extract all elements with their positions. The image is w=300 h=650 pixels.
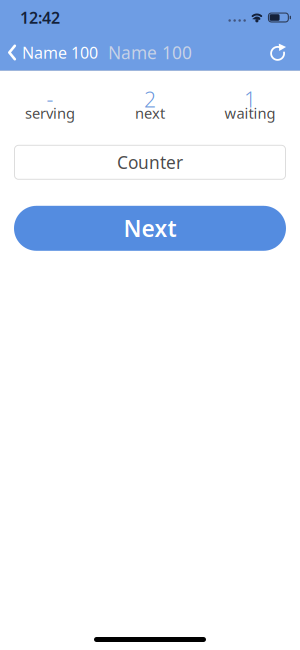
staticText: serving	[25, 103, 75, 123]
staticText: Counter	[117, 151, 183, 174]
staticText: Next	[123, 213, 176, 243]
staticText: waiting	[224, 103, 275, 123]
staticText: Name 100	[22, 42, 98, 63]
staticText: -	[46, 85, 53, 113]
staticText: 12:42	[20, 7, 60, 28]
button[interactable]: Refresh	[270, 44, 300, 61]
staticText: 1	[244, 85, 256, 113]
staticText: next	[135, 103, 165, 123]
button[interactable]: Name 100	[0, 42, 98, 63]
staticText: Name 100	[108, 41, 192, 64]
button[interactable]: Counter	[14, 145, 286, 180]
button[interactable]: Next	[14, 206, 286, 251]
staticText: 2	[144, 85, 156, 113]
